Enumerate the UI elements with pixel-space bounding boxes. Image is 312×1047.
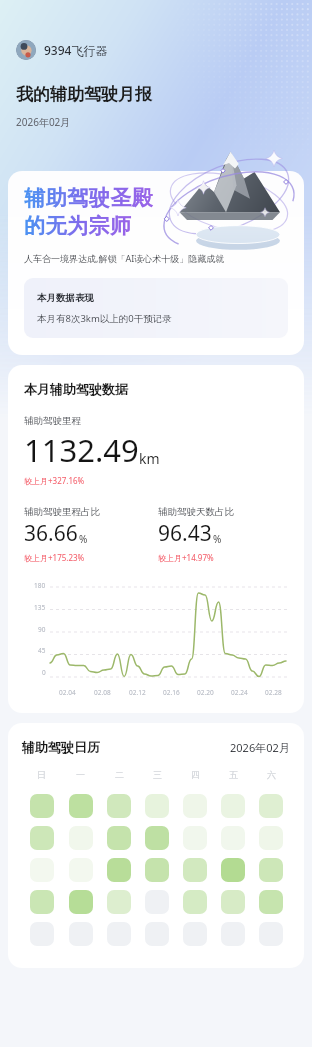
staticText: 9394飞行器 (44, 42, 108, 58)
staticText: 45 (38, 646, 46, 655)
staticText: 五 (229, 769, 238, 780)
staticText: 02.28 (265, 688, 282, 697)
button[interactable] (30, 922, 54, 946)
button[interactable] (259, 794, 283, 818)
staticText: % (79, 532, 88, 546)
staticText: km (139, 449, 160, 468)
button[interactable]: 辅助驾驶日历 (8, 723, 304, 968)
button[interactable] (107, 922, 131, 946)
staticText: 02.20 (197, 688, 214, 697)
button[interactable]: 本月辅助驾驶数据 (8, 365, 304, 713)
staticText: 辅助驾驶日历 (22, 739, 100, 755)
staticText: 本月有8次3km以上的0干预记录 (37, 312, 172, 325)
button[interactable] (107, 826, 131, 850)
button[interactable] (145, 890, 169, 914)
button[interactable] (183, 826, 207, 850)
button[interactable] (259, 826, 283, 850)
staticText: 较上月+14.97% (158, 552, 214, 563)
button[interactable] (145, 794, 169, 818)
button[interactable] (259, 890, 283, 914)
button[interactable] (145, 858, 169, 882)
button[interactable]: 9394飞行器 (16, 38, 108, 62)
button[interactable] (107, 890, 131, 914)
button[interactable] (183, 858, 207, 882)
button[interactable] (69, 890, 93, 914)
button[interactable]: 辅助驾驶天数占比 (158, 506, 292, 563)
button[interactable] (30, 794, 54, 818)
button[interactable] (221, 890, 245, 914)
button[interactable] (183, 794, 207, 818)
button[interactable]: 本月数据表现 (24, 278, 288, 338)
staticText: 我的辅助驾驶月报 (16, 84, 152, 105)
staticText: 的无为宗师 (24, 213, 132, 239)
button[interactable] (107, 794, 131, 818)
staticText: 36.66 (24, 519, 78, 548)
staticText: 人车合一境界达成,解锁「AI读心术十级」隐藏成就 (24, 252, 225, 264)
button[interactable] (183, 922, 207, 946)
staticText: 02.12 (129, 688, 146, 697)
button[interactable] (30, 858, 54, 882)
staticText: 02.16 (163, 688, 180, 697)
staticText: 本月数据表现 (37, 292, 94, 304)
staticText: 02.04 (59, 688, 76, 697)
button[interactable] (69, 858, 93, 882)
button[interactable]: 辅助驾驶里程占比 (24, 506, 158, 563)
staticText: 四 (191, 769, 200, 780)
staticText: 辅助驾驶天数占比 (158, 506, 234, 518)
staticText: 一 (76, 769, 85, 780)
staticText: 辅助驾驶圣殿 (24, 185, 153, 211)
staticText: 三 (153, 769, 162, 780)
staticText: 本月辅助驾驶数据 (24, 381, 128, 397)
button[interactable] (259, 922, 283, 946)
staticText: 二 (115, 769, 124, 780)
staticText: 六 (267, 769, 276, 780)
button[interactable] (221, 794, 245, 818)
staticText: 96.43 (158, 519, 212, 548)
button[interactable] (183, 890, 207, 914)
button[interactable] (221, 922, 245, 946)
staticText: 辅助驾驶里程占比 (24, 506, 100, 518)
staticText: 135 (34, 603, 46, 612)
staticText: 180 (34, 581, 46, 590)
staticText: 辅助驾驶里程 (24, 415, 81, 427)
button[interactable] (30, 826, 54, 850)
button[interactable] (259, 858, 283, 882)
button[interactable] (69, 794, 93, 818)
staticText: 0 (42, 668, 46, 677)
staticText: 2026年02月 (230, 740, 290, 755)
staticText: % (213, 532, 222, 546)
button[interactable] (145, 826, 169, 850)
button[interactable] (145, 922, 169, 946)
button[interactable] (69, 922, 93, 946)
button[interactable] (221, 858, 245, 882)
staticText: 日 (37, 769, 46, 780)
staticText: 02.08 (94, 688, 111, 697)
staticText: 90 (38, 625, 46, 634)
staticText: 1132.49 (24, 429, 139, 471)
button[interactable] (107, 858, 131, 882)
button[interactable] (69, 826, 93, 850)
staticText: 较上月+175.23% (24, 552, 85, 563)
staticText: 02.24 (231, 688, 248, 697)
staticText: 较上月+327.16% (24, 475, 85, 486)
button[interactable]: 辅助驾驶圣殿 (8, 171, 304, 355)
button[interactable] (221, 826, 245, 850)
staticText: 2026年02月 (16, 115, 71, 129)
button[interactable] (30, 890, 54, 914)
